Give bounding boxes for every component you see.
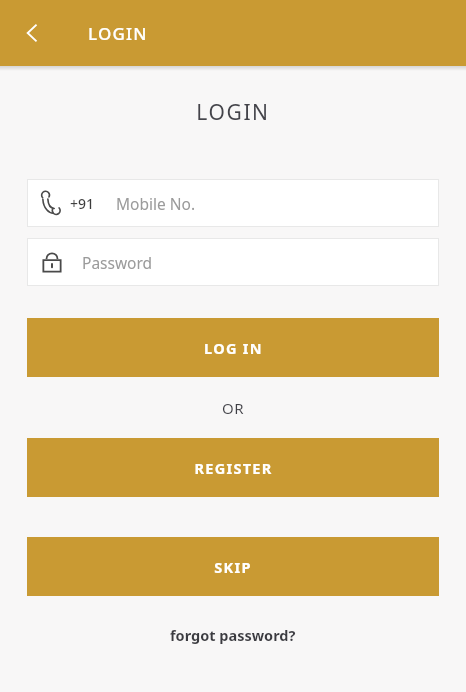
- staticText: forgot password?: [170, 625, 296, 645]
- staticText: SKIP: [214, 557, 252, 577]
- button[interactable]: Back: [10, 11, 54, 55]
- staticText: LOGIN: [196, 98, 270, 127]
- button[interactable]: REGISTER: [27, 438, 439, 497]
- button[interactable]: forgot password?: [0, 625, 466, 645]
- button[interactable]: Password: [27, 238, 439, 286]
- button[interactable]: LOG IN: [27, 318, 439, 377]
- button[interactable]: +91: [27, 179, 439, 227]
- staticText: +91: [70, 194, 95, 213]
- staticText: Mobile No.: [116, 193, 196, 214]
- staticText: LOGIN: [88, 22, 148, 45]
- staticText: LOG IN: [204, 338, 263, 358]
- staticText: OR: [222, 398, 245, 418]
- button[interactable]: SKIP: [27, 537, 439, 596]
- staticText: Password: [82, 252, 153, 273]
- staticText: REGISTER: [194, 458, 273, 478]
